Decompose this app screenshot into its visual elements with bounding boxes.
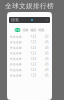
staticText: 123	[30, 74, 36, 77]
staticText: 作品名称	[10, 68, 22, 72]
staticText: 作品名称	[10, 35, 22, 38]
staticText: 45	[45, 52, 49, 55]
staticText: 45	[45, 46, 49, 50]
staticText: 123	[30, 46, 36, 50]
staticText: 123	[30, 35, 36, 38]
staticText: 123	[30, 68, 36, 72]
staticText: 45	[45, 68, 49, 72]
staticText: 作品名称	[10, 74, 22, 77]
staticText: 123	[30, 63, 36, 66]
staticText: 45	[45, 57, 49, 61]
staticText: 123	[30, 52, 36, 55]
staticText: 分类	[22, 28, 28, 32]
staticText: 45	[45, 40, 49, 44]
staticText: 作品名称	[10, 46, 22, 49]
staticText: 作品名称	[10, 63, 22, 66]
staticText: ···	[45, 17, 48, 23]
staticText: 123	[30, 40, 36, 44]
staticText: 榜单	[14, 28, 20, 32]
staticText: 时间	[38, 28, 44, 32]
staticText: 搜索	[11, 17, 19, 22]
staticText: 45	[45, 35, 49, 38]
staticText: 45	[45, 63, 49, 66]
staticText: 全球文娱排行榜	[5, 2, 54, 10]
staticText: 作品名称	[10, 57, 22, 61]
staticText: 地区	[30, 28, 36, 32]
staticText: 作品名称	[10, 41, 22, 44]
staticText: 作品名称	[10, 52, 22, 55]
staticText: 45	[45, 74, 49, 77]
staticText: 123	[30, 57, 36, 61]
